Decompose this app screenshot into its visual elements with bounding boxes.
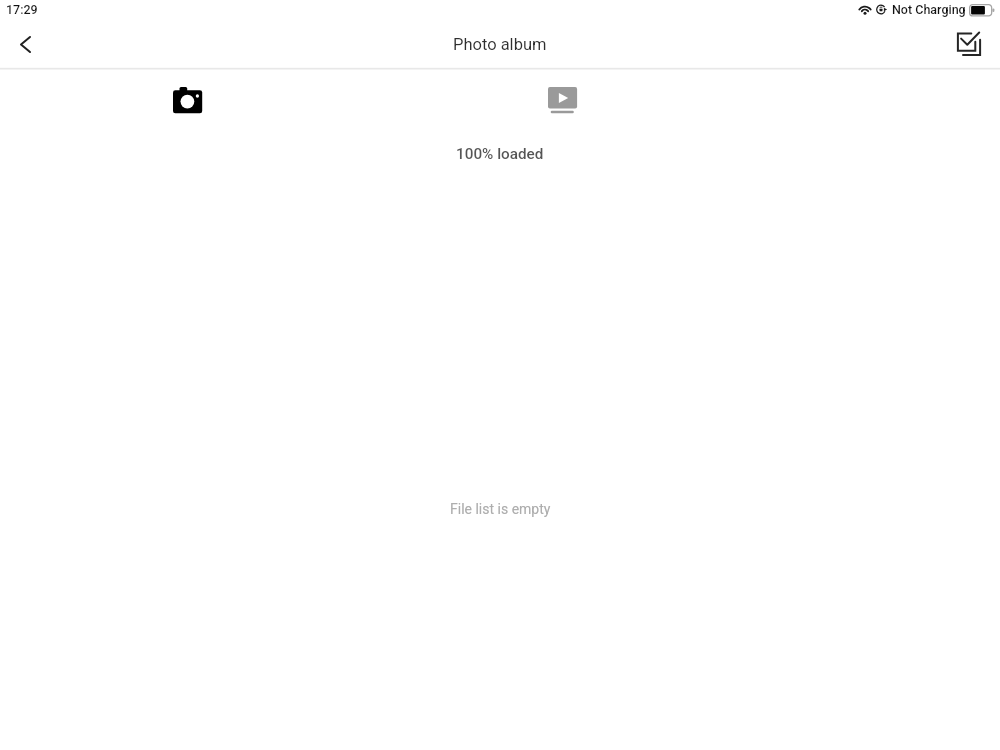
button[interactable]: Slideshow [539, 78, 587, 122]
staticText: Photo album [453, 35, 547, 54]
staticText: File list is empty [450, 501, 551, 517]
staticText: Not Charging [892, 2, 966, 17]
button[interactable]: Back [1, 26, 49, 63]
button[interactable]: Select all [943, 23, 991, 63]
staticText: 17:29 [6, 2, 38, 17]
staticText: 100% loaded [456, 145, 544, 163]
button[interactable]: Camera [164, 78, 212, 122]
